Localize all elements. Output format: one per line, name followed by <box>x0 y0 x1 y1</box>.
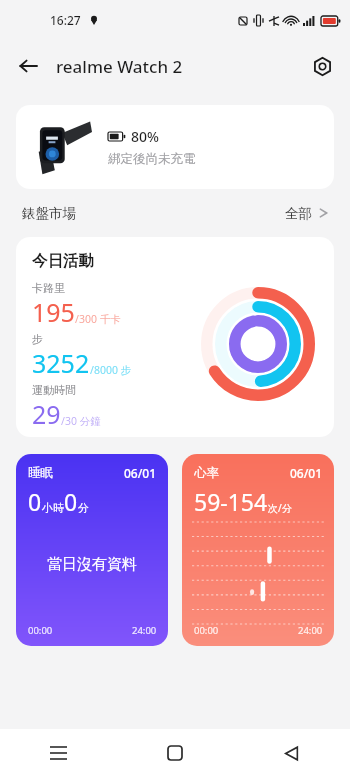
staticText: /8000 步 <box>90 363 132 377</box>
staticText: 小時 <box>42 501 64 515</box>
staticText: 80% <box>131 127 159 146</box>
button[interactable]: Home <box>116 729 233 777</box>
staticText: realme Watch 2 <box>56 55 183 78</box>
staticText: 睡眠 <box>28 465 53 481</box>
staticText: 00:00 <box>194 624 219 637</box>
button[interactable]: 80% <box>16 105 334 189</box>
button[interactable]: Back <box>233 729 350 777</box>
button[interactable]: 心率 <box>182 454 334 646</box>
button[interactable]: 睡眠 <box>16 454 168 646</box>
staticText: 06/01 <box>124 465 157 481</box>
staticText: 59-154 <box>194 486 268 517</box>
staticText: 次/分 <box>268 501 292 515</box>
staticText: 0 <box>64 486 78 517</box>
staticText: 運動時間 <box>32 383 76 397</box>
staticText: 卡路里 <box>32 281 65 295</box>
staticText: 錶盤市場 <box>22 205 76 222</box>
staticText: 24:00 <box>132 624 157 637</box>
staticText: 今日活動 <box>32 251 94 271</box>
button[interactable]: Recents <box>0 729 116 777</box>
staticText: 當日沒有資料 <box>47 555 137 574</box>
button[interactable]: Settings <box>304 48 340 84</box>
staticText: /30 分鐘 <box>61 414 101 428</box>
staticText: /300 千卡 <box>75 312 121 326</box>
button[interactable]: 今日活動 <box>16 237 334 437</box>
staticText: 06/01 <box>290 465 323 481</box>
staticText: 00:00 <box>28 624 53 637</box>
staticText: 綁定後尚未充電 <box>108 151 196 167</box>
staticText: 3252 <box>32 346 90 380</box>
staticText: 心率 <box>194 465 219 481</box>
button[interactable]: 錶盤市場 <box>22 189 328 237</box>
staticText: 195 <box>32 295 75 329</box>
staticText: 16:27 <box>50 12 81 28</box>
staticText: 分 <box>78 501 89 515</box>
staticText: 29 <box>32 397 61 431</box>
staticText: 全部 <box>285 205 312 222</box>
staticText: 24:00 <box>298 624 323 637</box>
button[interactable]: Back <box>10 48 46 84</box>
staticText: 步 <box>32 332 43 346</box>
staticText: 0 <box>28 486 42 517</box>
